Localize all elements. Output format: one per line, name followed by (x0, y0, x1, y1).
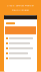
button[interactable] (6, 52, 35, 54)
button[interactable] (6, 37, 35, 39)
button[interactable] (6, 47, 35, 49)
staticText: Cloud Services Provider (7, 4, 34, 7)
staticText: Proudly Shared (11, 8, 29, 11)
button[interactable] (6, 42, 35, 44)
button[interactable] (6, 57, 35, 59)
